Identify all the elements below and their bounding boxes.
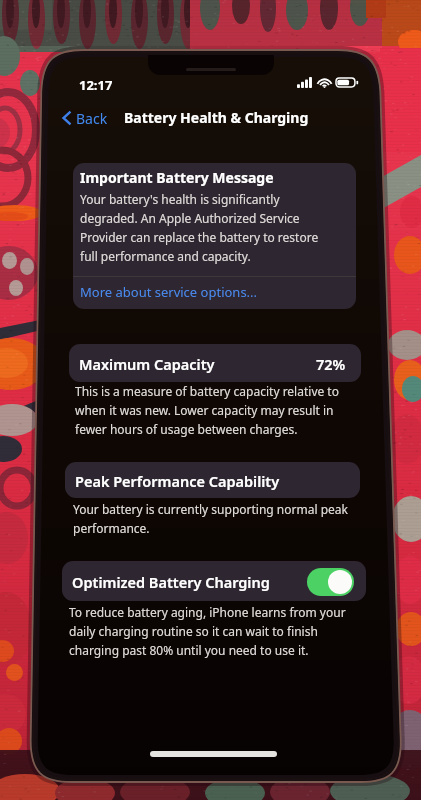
staticText: Your battery is currently supporting nor… [73,501,351,536]
staticText: 72% [316,354,346,374]
button[interactable]: Back [62,106,108,130]
staticText: Battery Health & Charging [124,108,309,127]
staticText: Peak Performance Capability [75,471,280,491]
staticText: This is a measure of battery capacity re… [75,383,347,437]
button[interactable]: Peak Performance Capability [65,462,360,498]
staticText: Important Battery Message [80,168,274,187]
button[interactable]: Optimized Battery Charging toggle [307,568,354,596]
button[interactable]: Important Battery Message [73,163,356,309]
staticText: Maximum Capacity [79,354,215,374]
staticText: To reduce battery aging, iPhone learns f… [69,604,354,658]
button[interactable]: Optimized Battery Charging [62,561,366,601]
staticText: Your battery's health is significantly d… [80,191,330,264]
staticText: Back [76,109,108,128]
button[interactable]: Maximum Capacity [69,344,361,382]
staticText: 12:17 [79,76,113,94]
button[interactable]: More about service options... [80,283,258,301]
staticText: Optimized Battery Charging [72,572,270,592]
